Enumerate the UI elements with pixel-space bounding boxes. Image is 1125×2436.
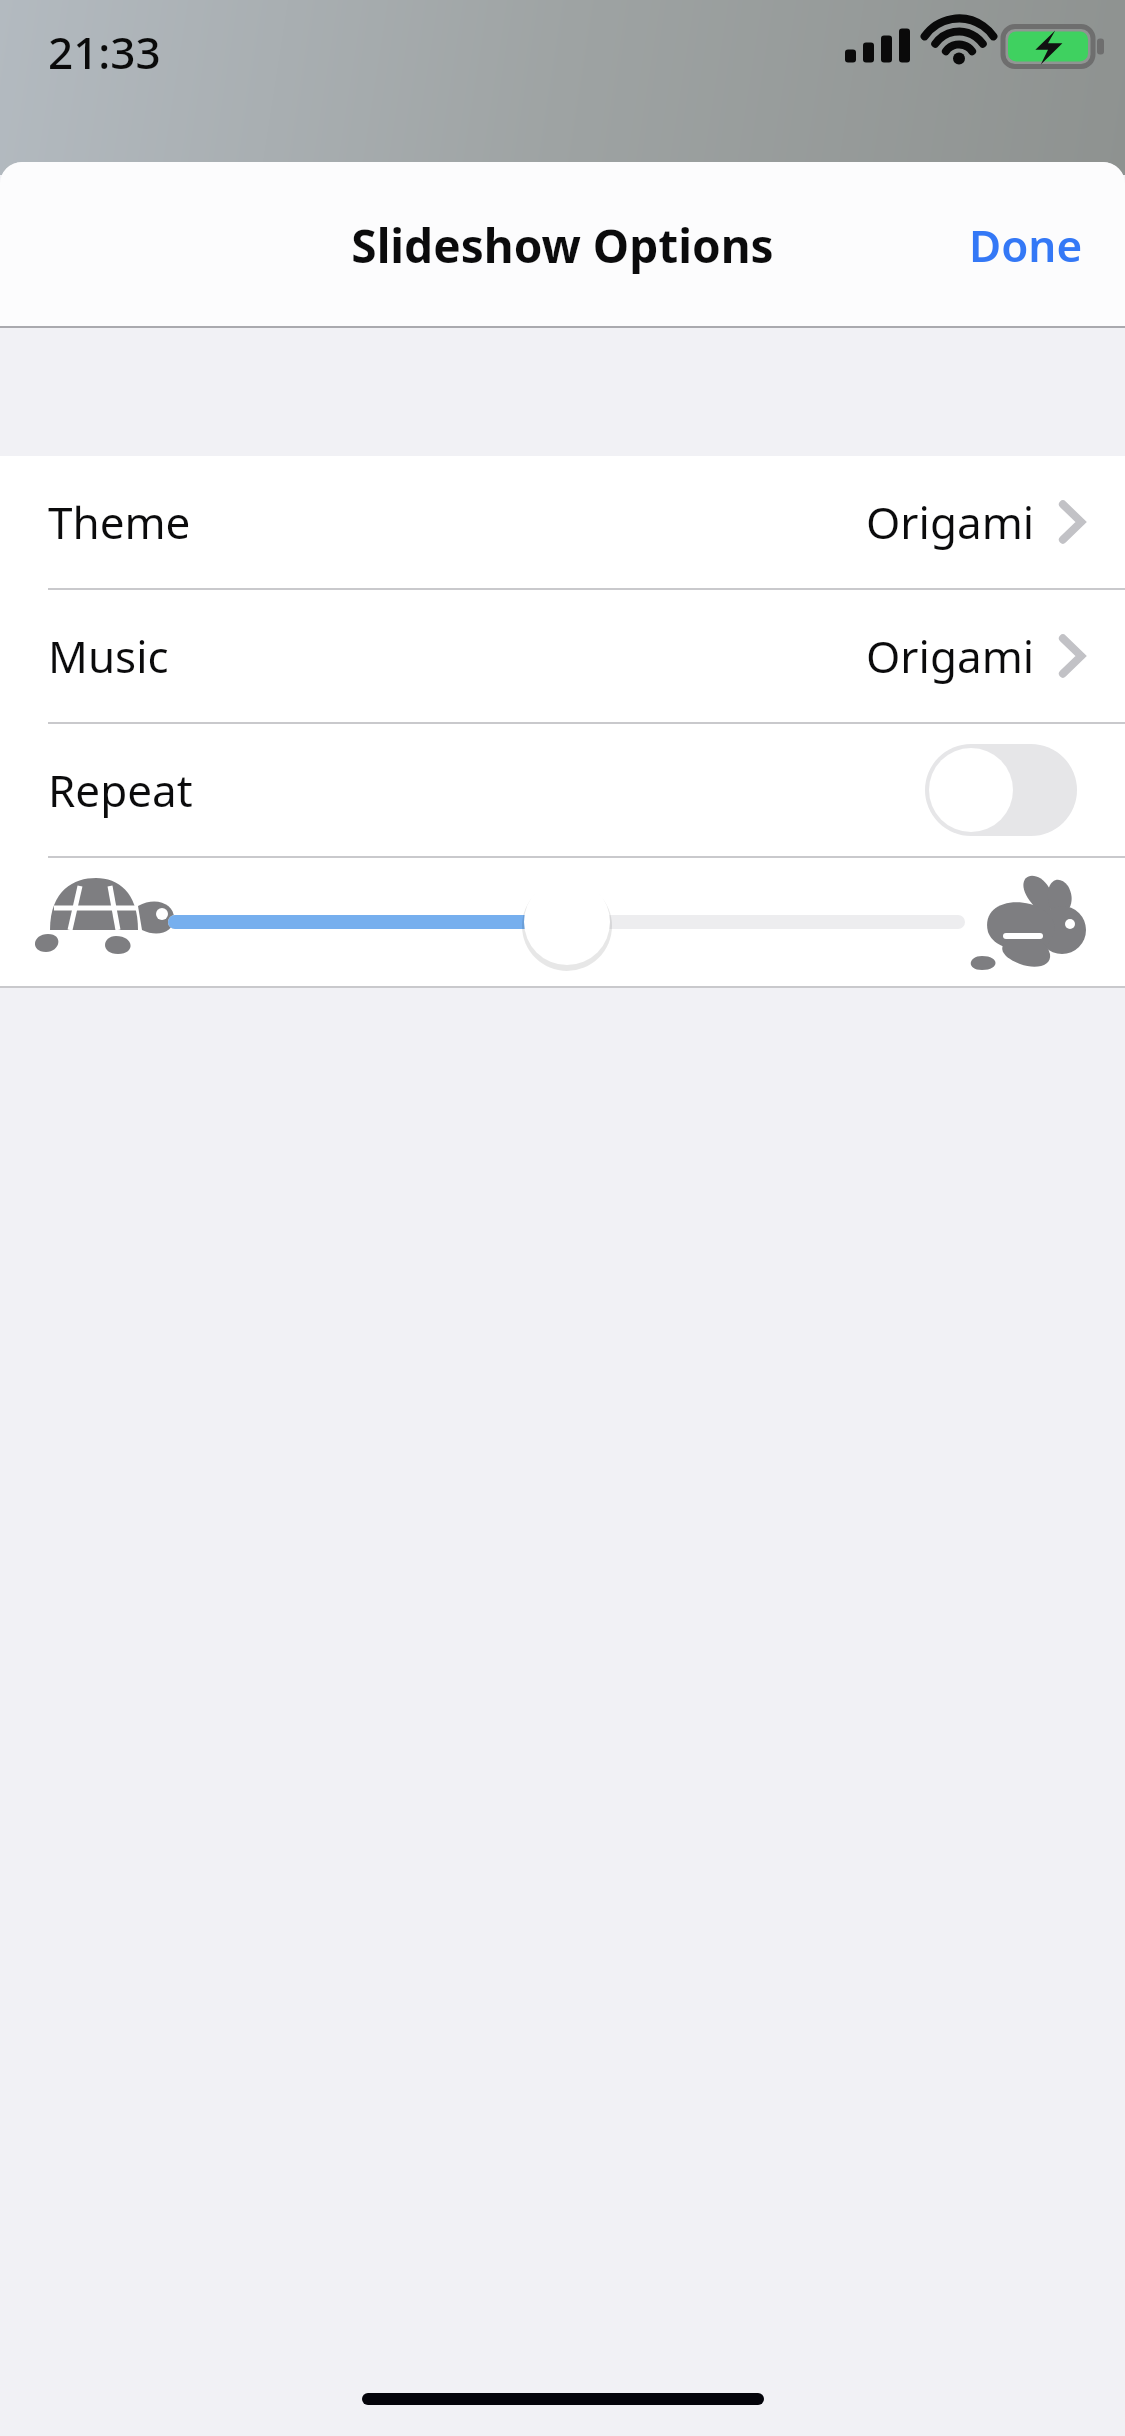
other: Repeat toggle, off	[925, 744, 1077, 836]
button[interactable]: Music	[0, 590, 1125, 722]
button[interactable]: Repeat	[0, 724, 1125, 856]
button[interactable]: Theme	[0, 456, 1125, 588]
staticText: Theme	[48, 492, 191, 552]
button[interactable]: Done	[953, 201, 1099, 289]
staticText: Origami	[866, 626, 1035, 686]
staticText: Origami	[866, 492, 1035, 552]
staticText: Repeat	[48, 760, 193, 820]
staticText: Music	[48, 626, 169, 686]
staticText: Slideshow Options	[351, 214, 774, 277]
staticText: Done	[969, 215, 1083, 275]
staticText: 21:33	[48, 22, 161, 82]
